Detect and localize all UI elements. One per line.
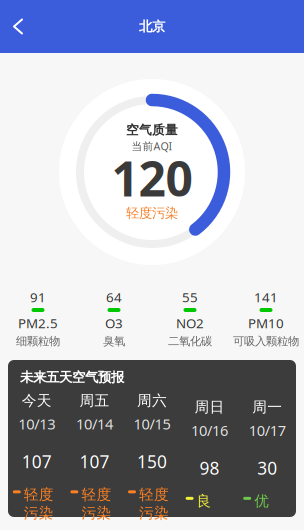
staticText: 轻度污染 xyxy=(126,205,178,221)
staticText: 臭氧 xyxy=(103,334,125,348)
staticText: 10/15 xyxy=(133,414,170,434)
staticText: 120 xyxy=(111,145,192,211)
staticText: 轻度污染 xyxy=(81,485,111,522)
staticText: 150 xyxy=(137,450,167,473)
staticText: 10/16 xyxy=(191,420,228,440)
staticText: 98 xyxy=(200,456,220,480)
staticText: 30 xyxy=(257,456,277,480)
staticText: 空气质量 xyxy=(126,122,178,138)
staticText: 107 xyxy=(22,450,52,473)
staticText: 当前AQI xyxy=(131,139,172,153)
staticText: 64 xyxy=(106,288,122,306)
staticText: 今天 xyxy=(22,391,52,410)
staticText: 可吸入颗粒物 xyxy=(233,334,299,348)
staticText: 141 xyxy=(254,288,278,306)
staticText: 北京 xyxy=(139,18,165,35)
staticText: PM10 xyxy=(248,314,284,332)
staticText: 55 xyxy=(182,288,198,306)
button[interactable]: Back xyxy=(0,0,36,52)
staticText: 107 xyxy=(79,450,109,473)
staticText: 良 xyxy=(197,492,212,510)
staticText: 91 xyxy=(30,288,46,306)
staticText: 轻度污染 xyxy=(24,485,54,522)
staticText: 细颗粒物 xyxy=(16,334,60,348)
staticText: NO2 xyxy=(176,314,204,332)
staticText: 轻度污染 xyxy=(139,485,169,522)
staticText: O3 xyxy=(105,314,123,332)
staticText: 优 xyxy=(254,492,269,510)
staticText: 10/14 xyxy=(76,414,113,434)
staticText: 周一 xyxy=(252,398,282,416)
staticText: 周日 xyxy=(195,398,225,416)
staticText: 未来五天空气预报 xyxy=(20,369,124,386)
staticText: 周五 xyxy=(79,391,109,410)
staticText: 周六 xyxy=(137,391,167,410)
staticText: 10/17 xyxy=(249,420,286,440)
staticText: PM2.5 xyxy=(18,314,58,332)
staticText: 10/13 xyxy=(18,414,55,434)
staticText: 二氧化碳 xyxy=(168,334,212,348)
